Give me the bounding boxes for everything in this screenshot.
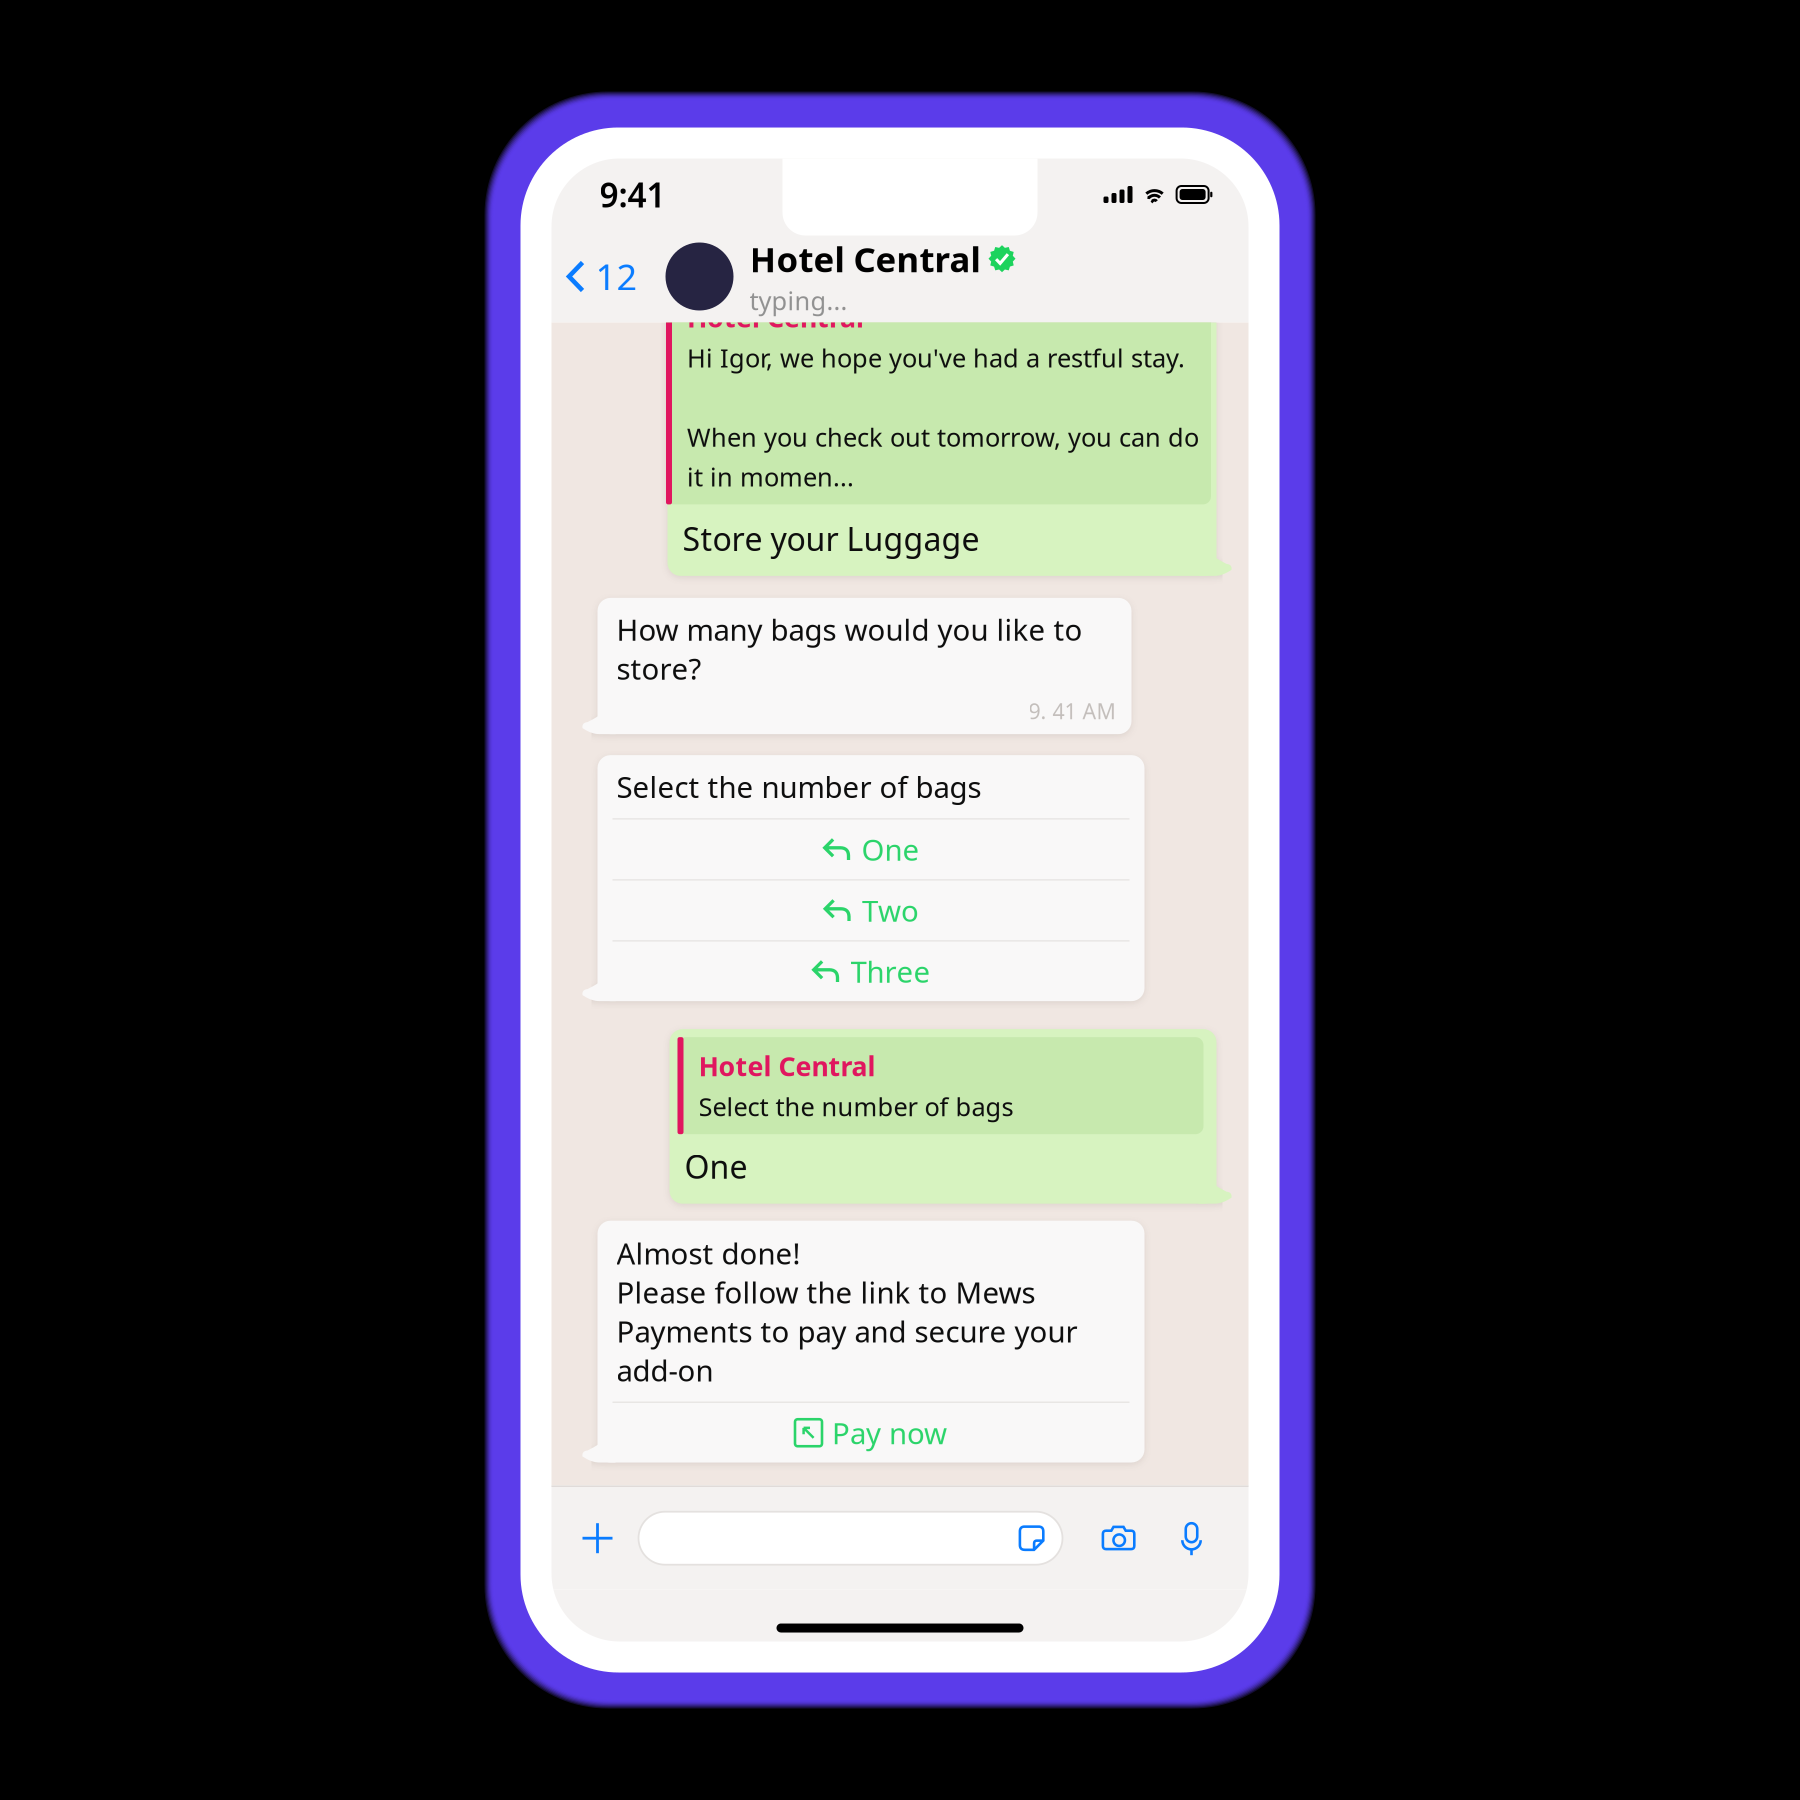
staticText: How many bags would you like to (616, 610, 1082, 649)
button[interactable]: One (597, 818, 1144, 879)
button[interactable]: Stickers (1013, 1512, 1049, 1565)
button[interactable]: Two (597, 879, 1144, 940)
staticText: typing... (749, 284, 847, 317)
button[interactable]: Back to chats (551, 230, 637, 322)
staticText: store? (616, 649, 701, 688)
staticText: Store your Luggage (682, 517, 979, 560)
staticText: Hotel Central (687, 299, 864, 335)
staticText: One (861, 830, 919, 869)
staticText: One (684, 1145, 747, 1188)
staticText: Hotel Central (698, 1048, 875, 1083)
staticText: 9:41 (599, 172, 665, 217)
staticText: Almost done! (616, 1234, 800, 1273)
staticText: Three (850, 952, 930, 991)
staticText: Select the number of bags (698, 1089, 1013, 1123)
staticText: it in momen... (687, 460, 854, 493)
staticText: Payments to pay and secure your (616, 1312, 1077, 1351)
button[interactable]: Record voice message (1175, 1507, 1207, 1569)
staticText: When you check out tomorrow, you can do (687, 420, 1199, 454)
staticText: Hi Igor, we hope you've had a restful st… (687, 341, 1185, 374)
staticText: Pay now (832, 1413, 947, 1452)
staticText: 9. 41 AM (1028, 697, 1115, 725)
staticText: Please follow the link to Mews (616, 1273, 1035, 1312)
button[interactable]: Camera (1096, 1507, 1142, 1569)
staticText: Two (862, 891, 919, 930)
button[interactable]: Pay now (597, 1401, 1144, 1462)
button[interactable]: Attach (574, 1507, 620, 1569)
staticText: Select the number of bags (616, 767, 981, 806)
staticText: Hotel Central (749, 236, 980, 282)
staticText: 12 (595, 253, 637, 300)
staticText: add-on (616, 1350, 713, 1389)
button[interactable]: Three (597, 940, 1144, 1001)
